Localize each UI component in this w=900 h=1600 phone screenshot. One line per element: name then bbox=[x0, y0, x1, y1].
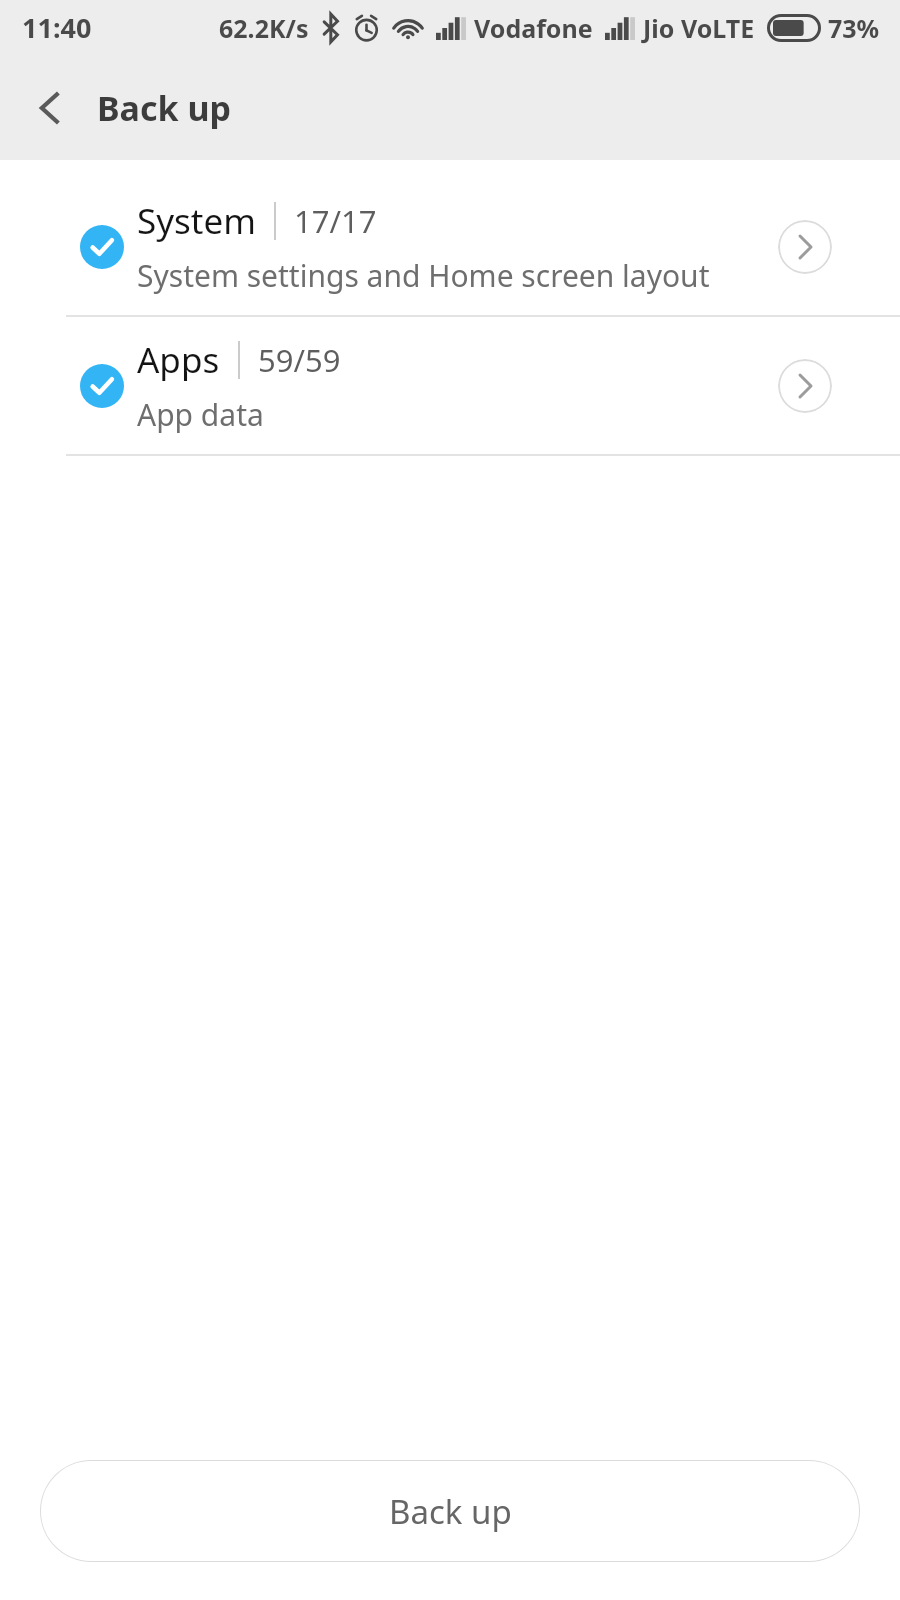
staticText: Apps bbox=[137, 336, 220, 384]
staticText: System bbox=[137, 197, 256, 245]
button[interactable]: Open Apps details bbox=[778, 359, 832, 413]
staticText: 59/59 bbox=[258, 339, 341, 381]
staticText: Jio VoLTE bbox=[643, 11, 755, 45]
staticText: App data bbox=[137, 394, 264, 435]
button[interactable]: Back bbox=[14, 72, 86, 144]
button[interactable]: Apps bbox=[0, 317, 900, 454]
staticText: 11:40 bbox=[22, 9, 92, 46]
staticText: Back up bbox=[97, 85, 232, 131]
staticText: Back up bbox=[389, 1489, 512, 1534]
button[interactable]: Back up bbox=[40, 1460, 860, 1562]
staticText: 17/17 bbox=[294, 200, 377, 242]
staticText: System settings and Home screen layout bbox=[137, 255, 710, 296]
staticText: 62.2K/s bbox=[219, 11, 309, 45]
staticText: 73% bbox=[828, 11, 880, 45]
staticText: Vodafone bbox=[474, 11, 593, 45]
button[interactable]: System bbox=[0, 178, 900, 315]
button[interactable]: Open System details bbox=[778, 220, 832, 274]
